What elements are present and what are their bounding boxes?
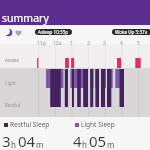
staticText: Light <box>5 80 16 86</box>
staticText: h <box>11 139 16 150</box>
button[interactable]: Asleep 10:35p <box>35 29 72 35</box>
staticText: h <box>82 139 87 150</box>
staticText: Restful Sleep <box>10 120 50 129</box>
staticText: 3 <box>103 40 106 47</box>
button[interactable]: Light Sleep <box>73 120 143 150</box>
staticText: 12a <box>53 40 62 47</box>
staticText: 4 <box>120 40 123 47</box>
staticText: Asleep 10:35p <box>38 29 69 35</box>
staticText: 04 <box>18 131 36 150</box>
staticText: 1 <box>70 40 73 47</box>
staticText: 05 <box>89 131 107 150</box>
staticText: summary <box>2 11 49 25</box>
staticText: Restful <box>5 102 20 108</box>
staticText: Light Sleep <box>81 120 115 129</box>
button[interactable]: Restful Sleep <box>2 120 72 150</box>
staticText: m <box>36 139 44 150</box>
staticText: 2 <box>87 40 90 47</box>
staticText: 5 <box>137 40 140 47</box>
staticText: 11p <box>37 40 46 47</box>
staticText: Woke Up 5:37a <box>115 29 148 35</box>
staticText: Awake <box>5 57 20 63</box>
staticText: 4 <box>73 131 82 150</box>
button[interactable]: Sleep <box>4 28 13 37</box>
staticText: m <box>107 139 115 150</box>
button[interactable]: Woke Up 5:37a <box>112 29 150 35</box>
staticText: 3 <box>2 131 11 150</box>
button[interactable]: Heart rate <box>14 28 23 37</box>
